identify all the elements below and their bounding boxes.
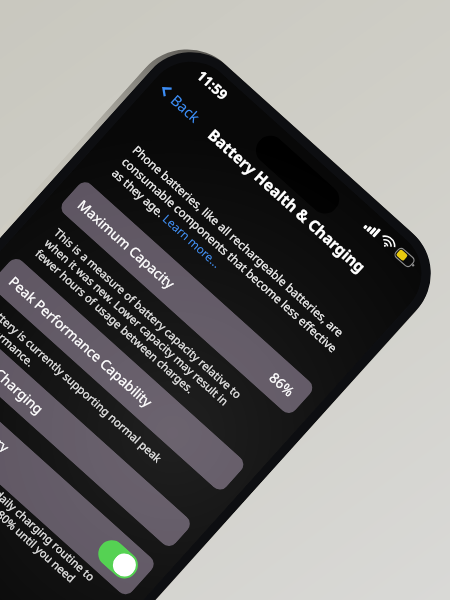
staticText: Maximum Capacity [74,195,179,293]
staticText: Phone batteries, like all rechargeable b… [109,142,352,367]
staticText: Battery Health & Charging [204,124,370,277]
staticText: Battery is currently supporting normal p… [0,300,165,476]
button[interactable]: Peak Performance Capability [0,255,247,493]
button[interactable]: Battery Charging [0,314,194,550]
staticText: 86% [266,368,299,401]
staticText: This is a measure of battery capacity re… [32,225,246,423]
staticText: Back [167,90,205,127]
staticText: Optimized Battery Charging [0,368,13,467]
button[interactable]: Optimized Battery Charging [0,354,158,598]
staticText: iPhone learns from your daily charging r… [0,399,99,600]
staticText: Peak Performance Capability [5,272,157,411]
button[interactable]: Optimized battery charging toggle [93,535,143,584]
button[interactable]: Back [152,76,207,129]
staticText: Battery Charging [0,330,48,418]
staticText: 11:59 [193,66,233,104]
button[interactable]: Maximum Capacity [58,178,316,417]
